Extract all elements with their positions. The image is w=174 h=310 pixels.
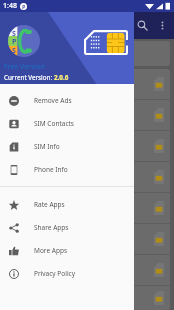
button[interactable]: Remove Ads xyxy=(0,89,134,112)
button[interactable] xyxy=(4,41,170,66)
staticText: Phone Info xyxy=(34,165,68,174)
button[interactable]: Phone Info xyxy=(0,158,134,181)
button[interactable] xyxy=(4,131,170,161)
staticText: Remove Ads xyxy=(34,96,72,105)
staticText: Free Version xyxy=(4,62,45,72)
staticText: 1:48 xyxy=(3,1,17,11)
button[interactable] xyxy=(4,162,170,192)
staticText: SIM Info xyxy=(34,142,60,151)
staticText: More Apps xyxy=(34,246,68,255)
staticText: Privacy Policy xyxy=(34,269,76,278)
button[interactable] xyxy=(4,193,170,223)
button[interactable] xyxy=(4,69,170,99)
staticText: S xyxy=(12,29,16,39)
button[interactable]: Share Apps xyxy=(0,216,134,239)
button[interactable]: More options xyxy=(152,15,173,36)
staticText: P xyxy=(12,37,17,47)
button[interactable]: SIM Info xyxy=(0,135,134,158)
staticText: Share Apps xyxy=(34,223,69,232)
button[interactable]: Search xyxy=(132,15,153,36)
button[interactable] xyxy=(4,286,170,310)
staticText: P xyxy=(22,3,26,10)
staticText: Rate Apps xyxy=(34,200,65,209)
staticText: 2.0.6 xyxy=(54,73,69,82)
button[interactable]: Privacy Policy xyxy=(0,262,134,285)
button[interactable]: More Apps xyxy=(0,239,134,262)
button[interactable] xyxy=(4,255,170,285)
button[interactable]: Rate Apps xyxy=(0,193,134,216)
button[interactable] xyxy=(4,100,170,130)
staticText: Current Version: xyxy=(4,73,54,82)
button[interactable]: SIM Contacts xyxy=(0,112,134,135)
staticText: S xyxy=(12,46,16,56)
staticText: SIM Contacts xyxy=(34,119,74,128)
button[interactable] xyxy=(4,224,170,254)
